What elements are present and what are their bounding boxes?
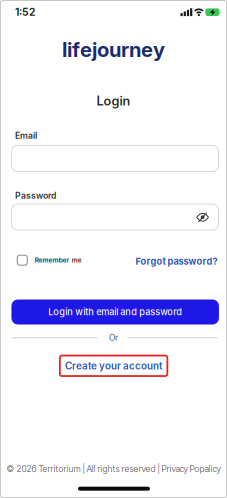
button[interactable] bbox=[11, 145, 218, 171]
staticText: Password bbox=[15, 190, 56, 201]
staticText: Email bbox=[15, 130, 37, 141]
staticText: Remember me bbox=[35, 256, 82, 264]
button[interactable] bbox=[196, 212, 209, 222]
staticText: 1:52 bbox=[15, 6, 35, 18]
staticText: Create your account bbox=[65, 360, 162, 372]
button[interactable] bbox=[11, 204, 218, 230]
staticText: Login with email and password bbox=[48, 306, 182, 317]
staticText: © 2026 Territorium | All rights reserved… bbox=[6, 464, 220, 474]
staticText: Forgot password? bbox=[136, 256, 218, 267]
staticText: Or bbox=[109, 333, 118, 343]
staticText: lifejourney bbox=[62, 38, 165, 62]
button[interactable]: Remember me bbox=[17, 255, 87, 265]
button[interactable]: Create your account bbox=[60, 356, 167, 376]
staticText: Login bbox=[96, 93, 130, 109]
button[interactable]: Forgot password? bbox=[8, 256, 218, 267]
button[interactable]: Login with email and password bbox=[11, 299, 219, 324]
